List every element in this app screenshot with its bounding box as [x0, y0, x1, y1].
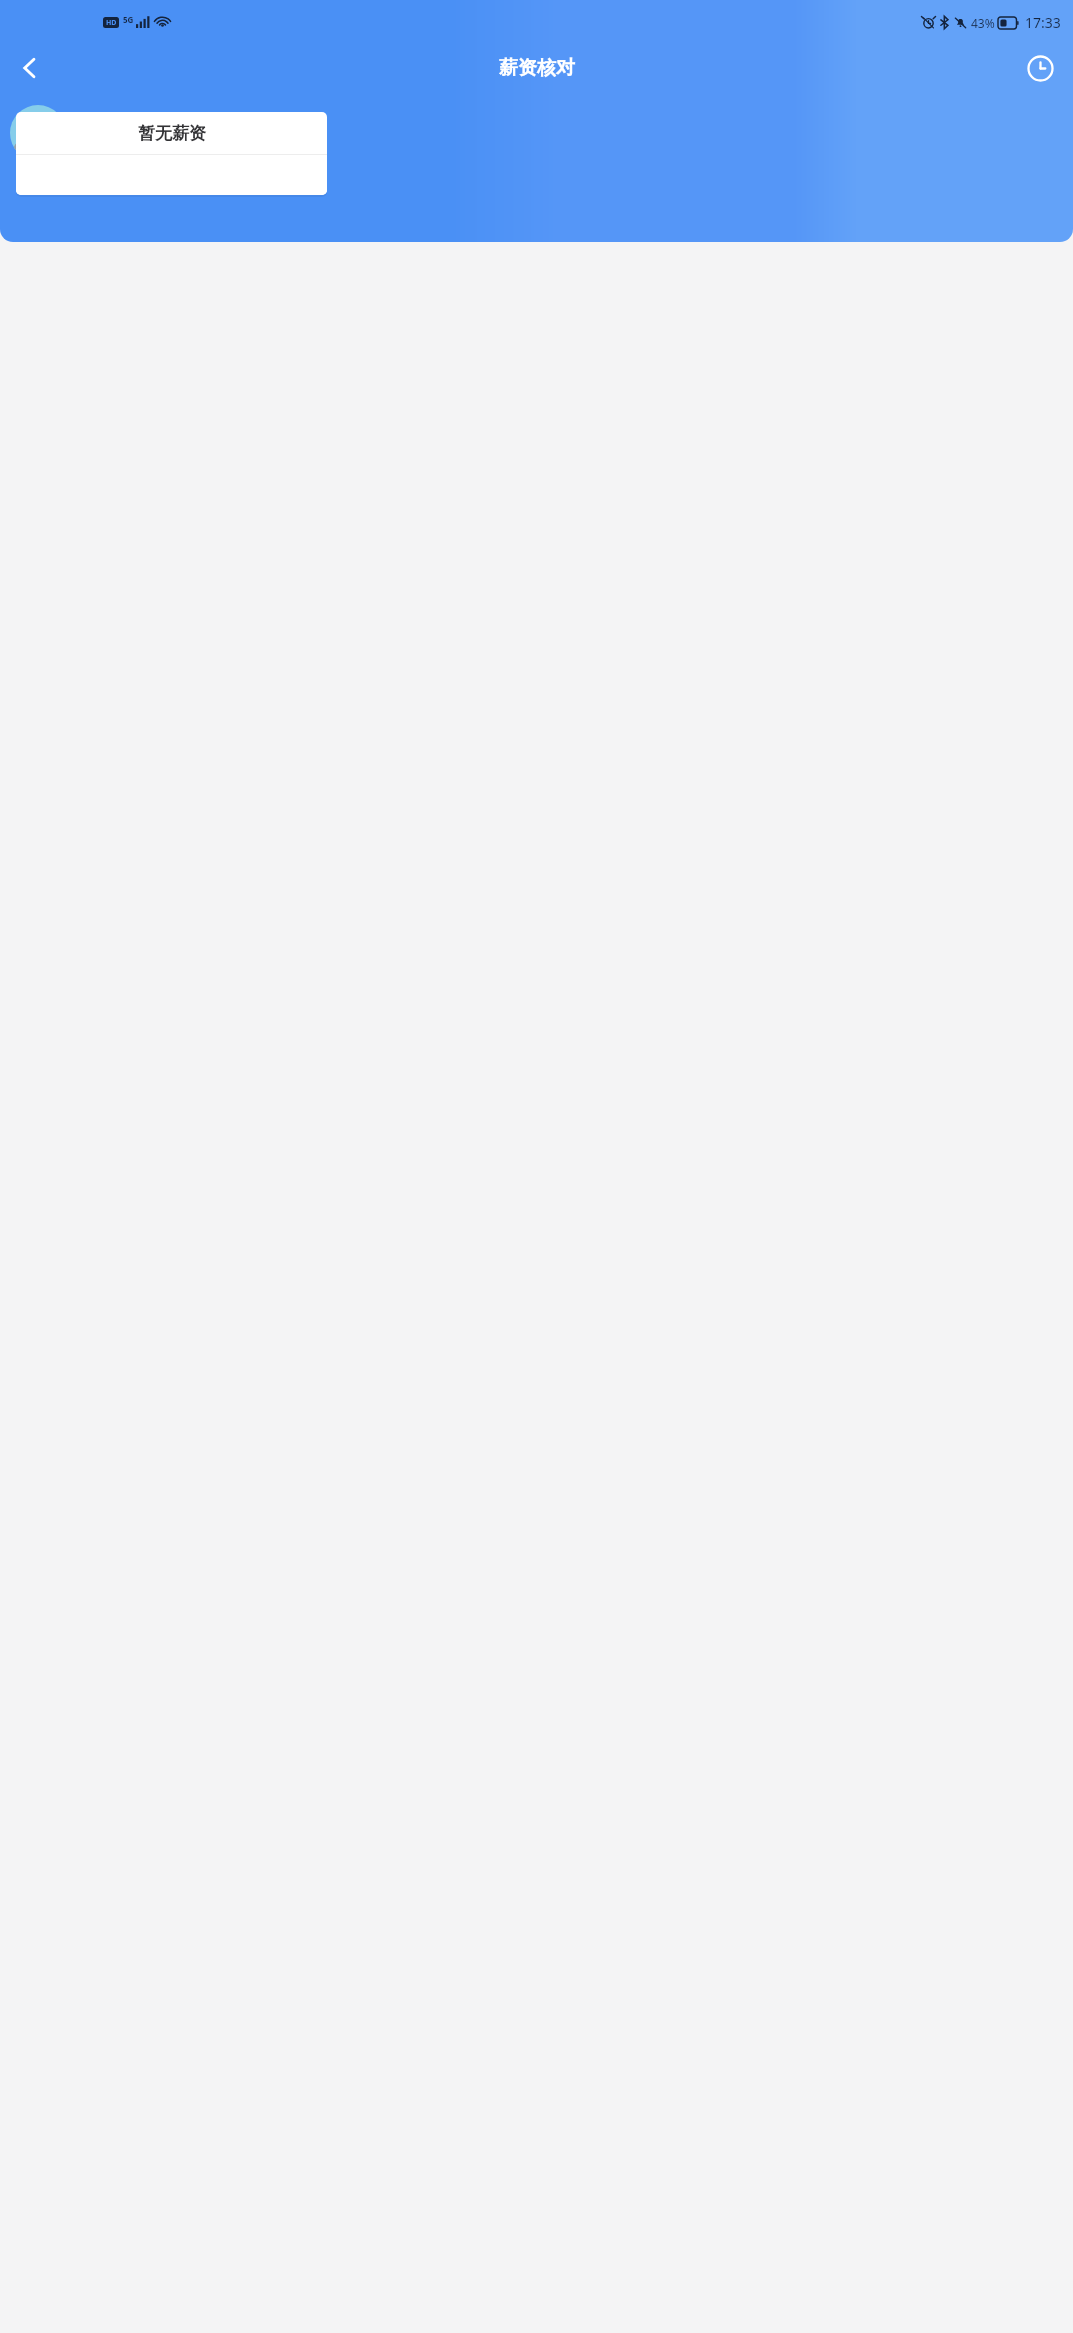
button[interactable]: 测试 [0, 96, 1073, 170]
staticText: 17:33 [1025, 13, 1061, 32]
staticText: 暂无薪资 [138, 123, 206, 144]
button[interactable]: 暂无薪资 [16, 112, 327, 195]
staticText: 43% [971, 15, 995, 31]
staticText: 5G [123, 14, 134, 25]
staticText: HD [106, 18, 117, 28]
button[interactable]: Back [6, 44, 54, 92]
staticText: 测试 [96, 119, 140, 147]
button[interactable]: History [1016, 44, 1064, 92]
staticText: 薪资核对 [499, 56, 575, 80]
